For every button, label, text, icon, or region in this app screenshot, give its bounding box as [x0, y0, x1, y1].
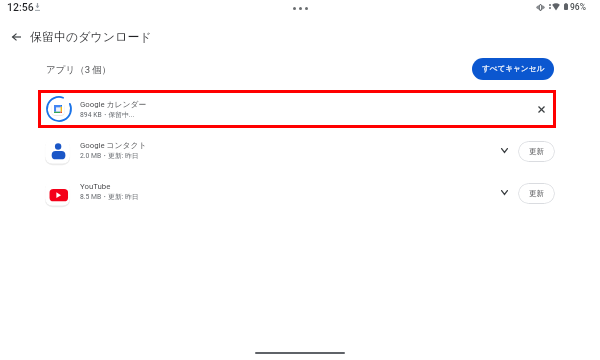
button[interactable]: [38, 181, 556, 205]
button[interactable]: [38, 90, 556, 128]
staticText: 894 KB・保留中...: [80, 110, 135, 119]
button[interactable]: すべてキャンセル: [472, 58, 554, 80]
staticText: Google カレンダー: [80, 99, 147, 109]
staticText: 保留中のダウンロード: [30, 29, 152, 44]
button[interactable]: Cancel download: [529, 97, 553, 121]
staticText: すべてキャンセル: [482, 64, 545, 74]
staticText: Google コンタクト: [80, 140, 147, 150]
staticText: YouTube: [80, 182, 111, 191]
button[interactable]: 更新: [518, 141, 555, 162]
staticText: 更新: [529, 147, 544, 156]
staticText: 更新: [529, 189, 544, 198]
button[interactable]: 更新: [518, 183, 555, 204]
staticText: 8.5 MB・更新: 昨日: [80, 192, 139, 201]
button[interactable]: [38, 139, 556, 163]
button[interactable]: Expand: [492, 138, 516, 162]
staticText: アプリ（3 個）: [46, 64, 112, 76]
button[interactable]: Expand: [492, 180, 516, 204]
staticText: 96%: [570, 2, 586, 12]
staticText: 12:56: [7, 1, 34, 13]
button[interactable]: Back: [4, 25, 28, 49]
staticText: 2.0 MB・更新: 昨日: [80, 151, 139, 160]
